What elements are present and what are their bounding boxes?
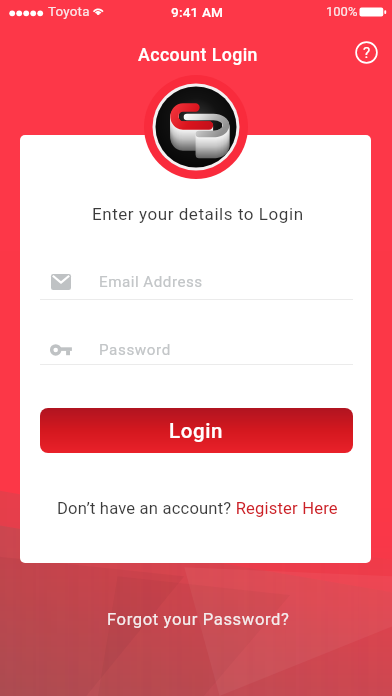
- staticText: Forgot your Password?: [107, 610, 290, 629]
- button[interactable]: Help: [352, 38, 381, 67]
- staticText: Account Login: [138, 45, 258, 66]
- staticText: Email Address: [99, 273, 203, 291]
- button[interactable]: Don’t have an account? Register Here: [22, 495, 371, 521]
- staticText: ?: [363, 44, 371, 62]
- staticText: Toyota: [48, 4, 90, 20]
- staticText: Login: [169, 419, 224, 443]
- staticText: 100%: [326, 4, 358, 19]
- staticText: 9:41 AM: [171, 4, 224, 20]
- staticText: Enter your details to Login: [92, 204, 304, 224]
- staticText: Password: [99, 341, 171, 359]
- staticText: Don’t have an account? Register Here: [57, 499, 338, 518]
- button[interactable]: Login: [40, 408, 353, 453]
- button[interactable]: Forgot your Password?: [2, 606, 392, 632]
